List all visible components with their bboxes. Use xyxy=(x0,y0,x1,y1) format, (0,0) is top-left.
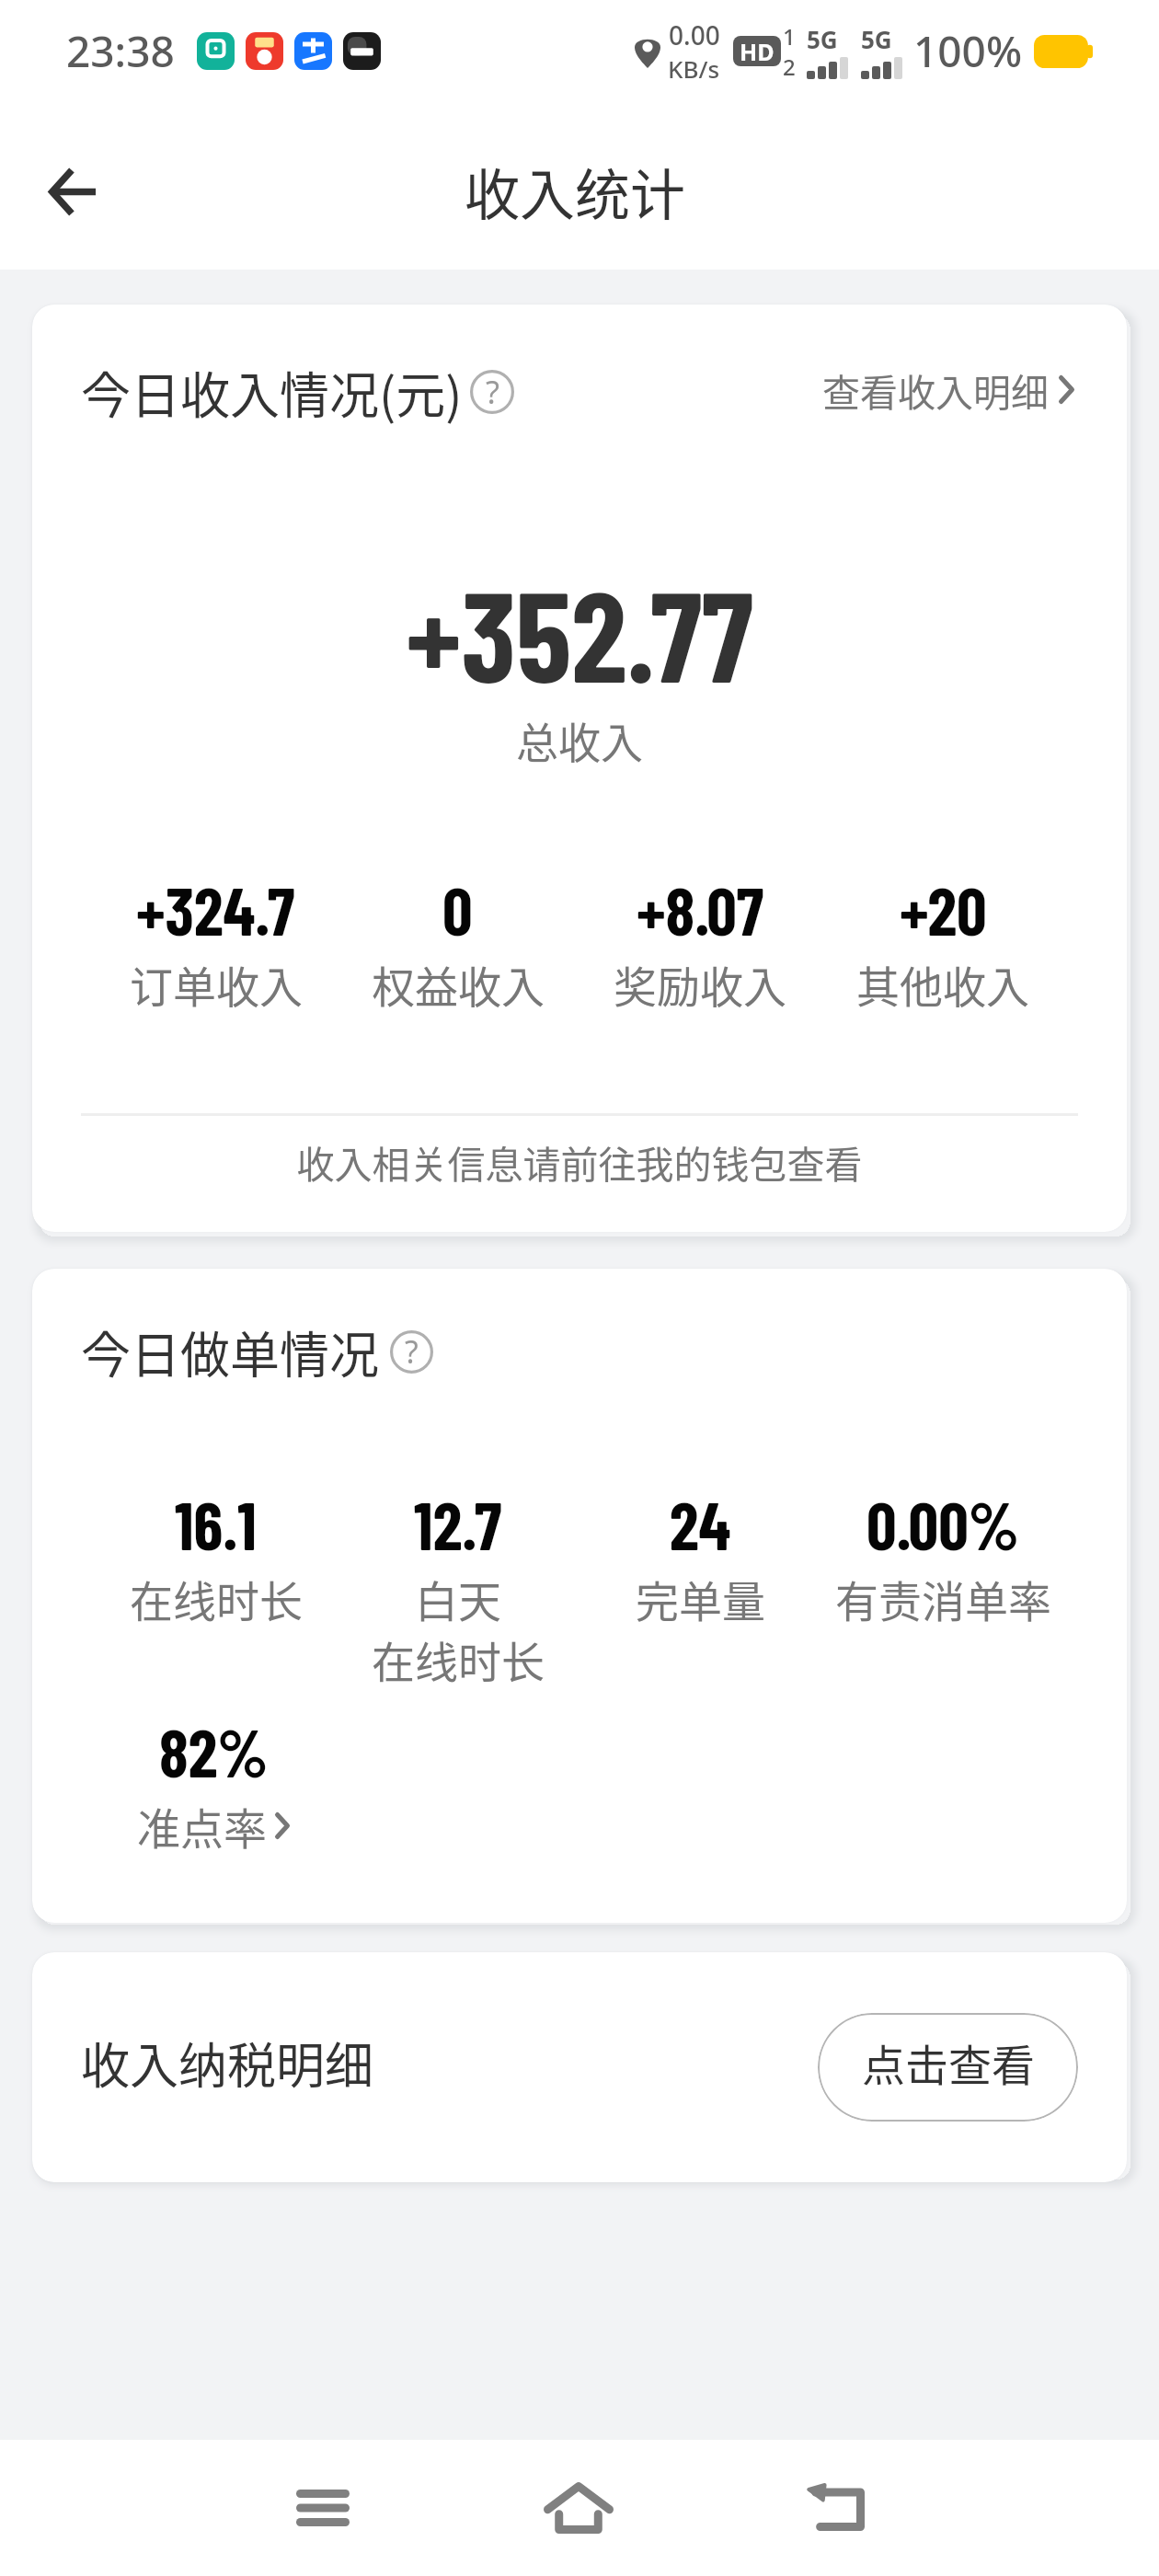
staticText: 白天 在线时长 xyxy=(372,1567,545,1690)
staticText: 查看收入明细 xyxy=(822,362,1049,417)
staticText: 100% xyxy=(913,22,1023,80)
staticText: 今日做单情况 xyxy=(81,1316,379,1387)
button[interactable]: 准点率 xyxy=(137,1794,290,1857)
staticText: 收入统计 xyxy=(465,151,685,231)
staticText: +352.77 xyxy=(32,557,1127,707)
staticText: 0 xyxy=(442,869,473,949)
staticText: 收入相关信息请前往我的钱包查看 xyxy=(32,1134,1127,1189)
staticText: 在线时长 xyxy=(130,1567,303,1629)
button[interactable]: Recent apps xyxy=(258,2453,387,2563)
button[interactable]: Back xyxy=(772,2453,901,2563)
staticText: 12.7 xyxy=(414,1484,502,1563)
staticText: 今日收入情况(元) xyxy=(81,356,463,428)
button[interactable]: 查看收入明细 xyxy=(822,362,1074,417)
staticText: 其他收入 xyxy=(856,952,1029,1015)
button[interactable]: Home xyxy=(514,2453,643,2563)
staticText: 2 xyxy=(783,52,796,82)
staticText: 订单收入 xyxy=(130,952,303,1015)
staticText: 总收入 xyxy=(32,709,1127,771)
staticText: 点击查看 xyxy=(862,2030,1035,2093)
button[interactable]: 点击查看 xyxy=(818,2013,1078,2122)
staticText: 82% xyxy=(159,1711,269,1790)
staticText: 有责消单率 xyxy=(835,1567,1051,1629)
staticText: ? xyxy=(405,1330,419,1373)
staticText: 5G xyxy=(807,23,838,55)
staticText: ? xyxy=(486,370,499,413)
staticText: +8.07 xyxy=(637,869,764,949)
staticText: 权益收入 xyxy=(372,952,545,1015)
staticText: 1 xyxy=(783,21,796,52)
staticText: +20 xyxy=(900,869,987,949)
staticText: 0.00% xyxy=(866,1484,1019,1563)
staticText: 准点率 xyxy=(137,1794,267,1857)
staticText: 23:38 xyxy=(66,22,175,80)
staticText: 24 xyxy=(670,1484,731,1563)
staticText: HD xyxy=(740,36,775,66)
staticText: 0.00 xyxy=(669,17,720,52)
staticText: +324.7 xyxy=(136,869,295,949)
staticText: 奖励收入 xyxy=(614,952,786,1015)
staticText: 完单量 xyxy=(636,1567,765,1629)
staticText: KB/s xyxy=(668,52,720,85)
staticText: 收入纳税明细 xyxy=(81,2028,373,2099)
staticText: 16.1 xyxy=(175,1484,257,1563)
button[interactable]: Back xyxy=(21,141,122,242)
staticText: 5G xyxy=(861,23,892,55)
